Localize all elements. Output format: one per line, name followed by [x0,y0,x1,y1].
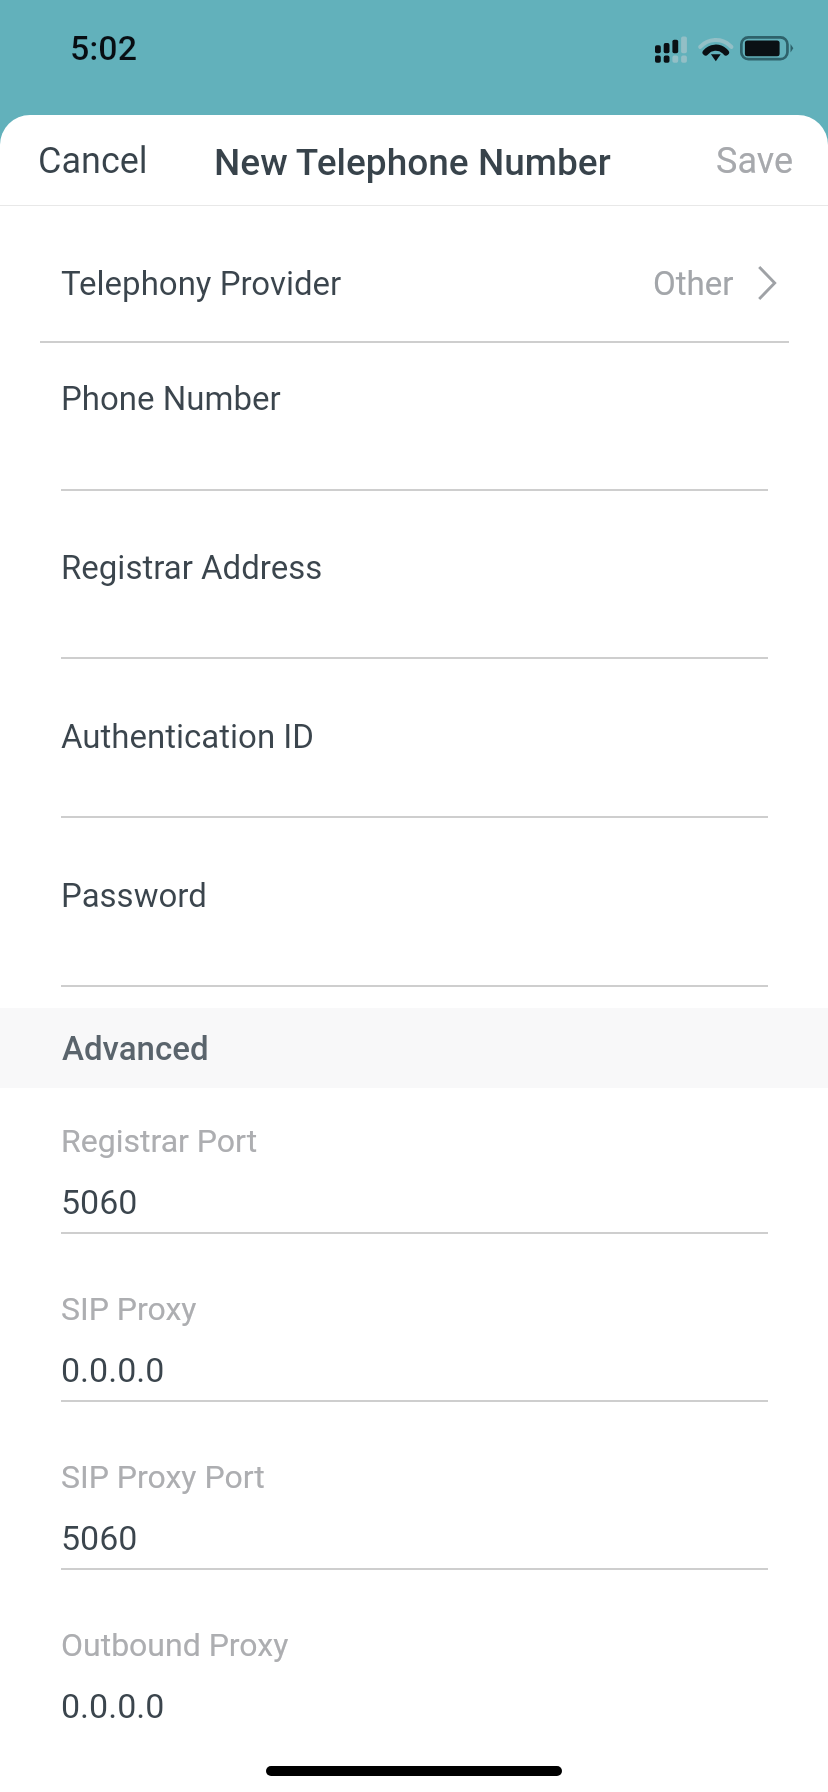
staticText: SIP Proxy [61,1290,197,1328]
button[interactable]: SIP Proxy Port [0,1424,828,1568]
staticText: 0.0.0.0 [61,1350,165,1390]
other: Wi-Fi [694,30,734,64]
staticText: Other [653,264,734,303]
staticText: 5060 [61,1518,138,1558]
staticText: 5:02 [70,28,137,68]
button[interactable]: Phone Number [0,334,828,489]
staticText: Registrar Address [61,548,323,587]
button[interactable]: Save [692,121,828,199]
staticText: Save [716,140,793,182]
staticText: Telephony Provider [61,264,342,303]
other: Battery [740,36,795,62]
button[interactable]: Outbound Proxy [0,1592,828,1736]
button[interactable]: Authentication ID [0,672,828,827]
staticText: SIP Proxy Port [61,1458,265,1496]
button[interactable]: Password [0,831,828,986]
button[interactable]: Telephony Provider [0,205,828,341]
staticText: Cancel [38,140,148,182]
button[interactable]: Registrar Address [0,503,828,658]
staticText: Authentication ID [61,717,314,756]
staticText: Advanced [62,1029,209,1068]
staticText: Registrar Port [61,1122,258,1160]
staticText: Phone Number [61,379,281,418]
other: Cellular signal [655,36,688,64]
button[interactable]: SIP Proxy [0,1256,828,1400]
staticText: 5060 [61,1182,138,1222]
staticText: 0.0.0.0 [61,1686,165,1726]
button[interactable]: Cancel [0,121,172,199]
button[interactable]: Registrar Port [0,1088,828,1232]
other: Choose telephony provider [758,266,776,300]
staticText: Password [61,876,207,915]
staticText: Outbound Proxy [61,1626,289,1664]
staticText: New Telephone Number [214,141,611,184]
